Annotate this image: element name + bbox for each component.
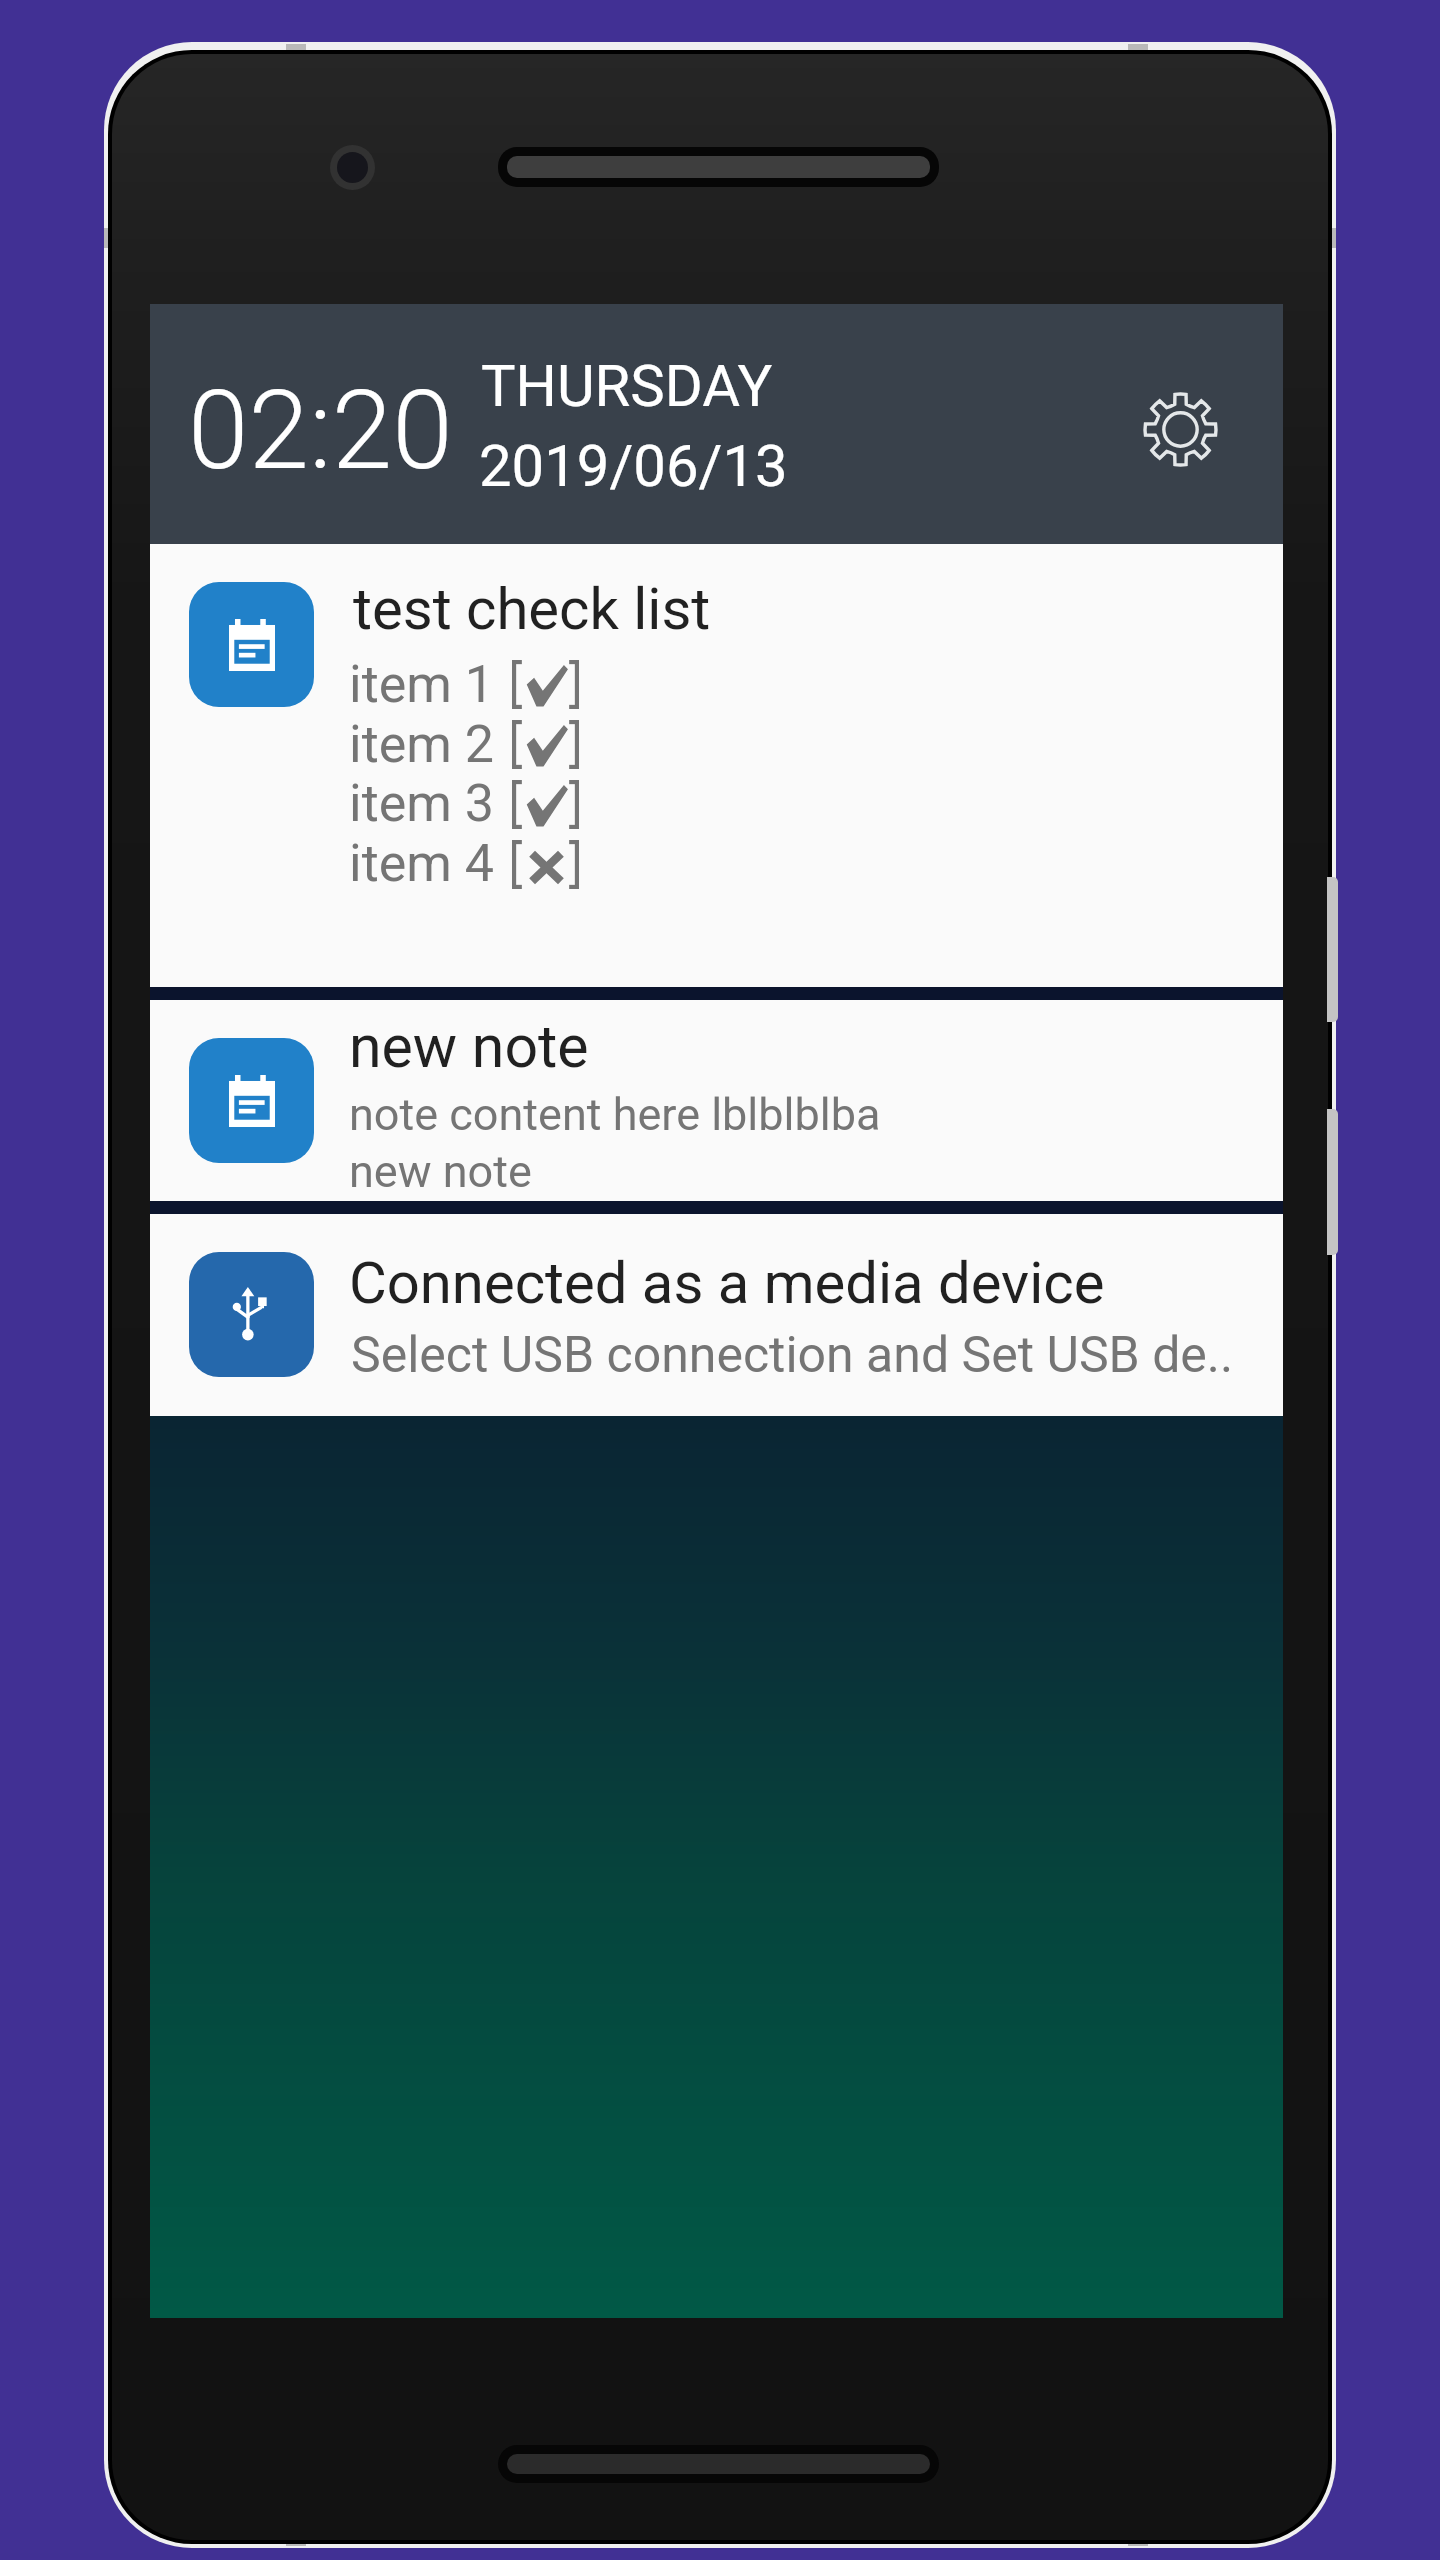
staticText: THURSDAY — [481, 352, 773, 420]
staticText: 02:20 — [188, 367, 453, 495]
staticText: new note — [349, 1012, 589, 1081]
staticText: item 1 — [349, 654, 494, 715]
button[interactable]: Settings — [1128, 377, 1232, 481]
staticText: note content here lblblblba — [349, 1088, 881, 1141]
staticText: Select USB connection and Set USB de.. — [351, 1326, 1234, 1385]
button[interactable]: new note — [150, 1000, 1283, 1202]
button[interactable]: test check list — [150, 544, 1283, 988]
staticText: item 2 — [349, 714, 494, 775]
staticText: 2019/06/13 — [479, 432, 788, 500]
button[interactable]: Connected as a media device — [150, 1214, 1283, 1416]
staticText: Connected as a media device — [349, 1249, 1105, 1317]
staticText: new note — [349, 1145, 532, 1198]
staticText: item 4 — [349, 833, 494, 894]
staticText: test check list — [353, 575, 711, 643]
staticText: item 3 — [349, 773, 494, 834]
